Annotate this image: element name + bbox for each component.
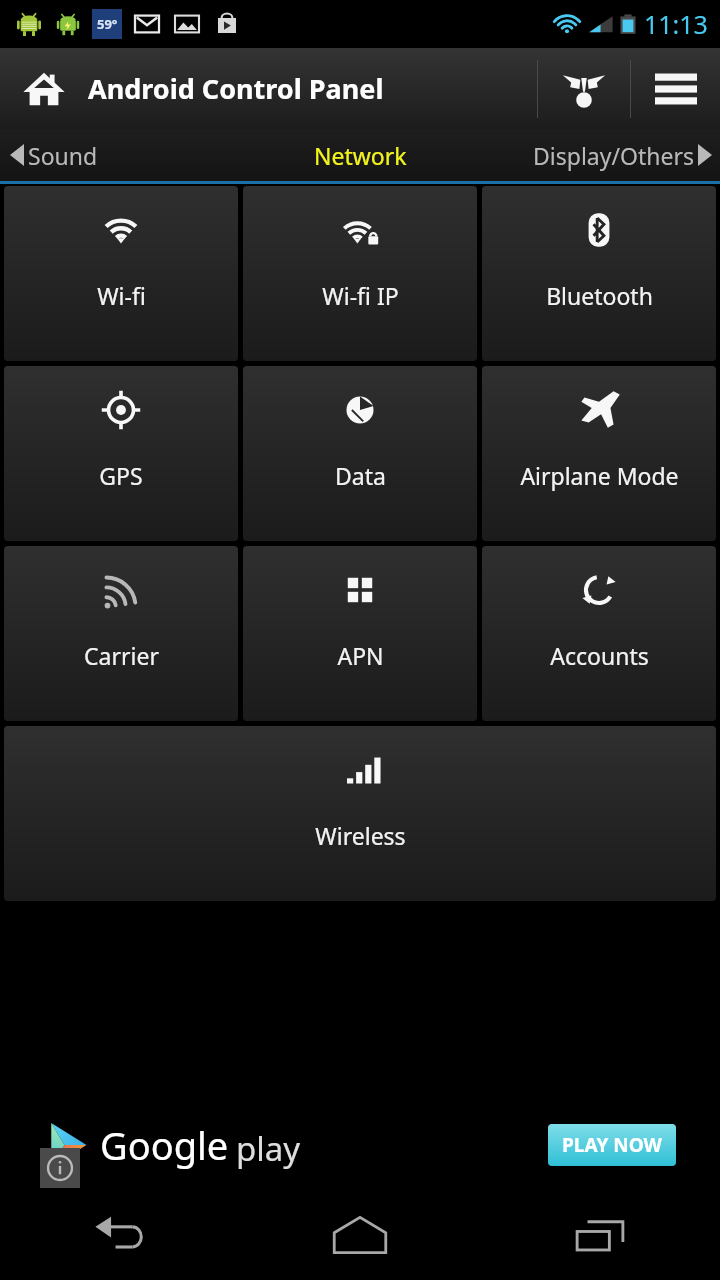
staticText: APN [337,640,384,671]
button[interactable]: APN [243,546,477,721]
button[interactable]: Network [240,129,480,181]
button[interactable]: Home [0,48,88,129]
button[interactable]: Sound [0,129,240,181]
button[interactable]: Back [0,1190,240,1280]
button[interactable]: Wi-fi IP [243,186,477,361]
button[interactable]: GPS [4,366,238,541]
staticText: GPS [99,460,143,491]
staticText: Android Control Panel [88,70,537,107]
button[interactable]: Display/Others [480,129,720,181]
staticText: Network [314,140,407,171]
button[interactable]: Broadcast [538,48,630,129]
button[interactable]: Airplane Mode [482,366,716,541]
staticText: Accounts [550,640,649,671]
staticText: Data [335,460,386,491]
staticText: Display/Others [533,140,694,171]
staticText: Sound [28,140,98,171]
button[interactable]: Wi-fi [4,186,238,361]
staticText: Carrier [84,640,159,671]
staticText: Wi-fi IP [322,280,399,311]
button[interactable]: Google [0,1100,720,1190]
staticText: 59° [97,15,118,33]
staticText: 11:13 [644,7,708,41]
button[interactable]: Data [243,366,477,541]
button[interactable]: Bluetooth [482,186,716,361]
button[interactable]: PLAY NOW [548,1124,676,1166]
staticText: PLAY NOW [562,1132,662,1158]
button[interactable]: Home [240,1190,480,1280]
staticText: Bluetooth [546,280,653,311]
staticText: Wi-fi [97,280,146,311]
staticText: Wireless [315,820,406,851]
button[interactable]: Menu [631,48,720,129]
button[interactable]: Wireless [4,726,716,901]
button[interactable]: Carrier [4,546,238,721]
button[interactable]: Recent apps [480,1190,720,1280]
staticText: play [236,1126,301,1171]
staticText: Google [100,1119,229,1171]
button[interactable]: Accounts [482,546,716,721]
staticText: Airplane Mode [520,460,679,491]
